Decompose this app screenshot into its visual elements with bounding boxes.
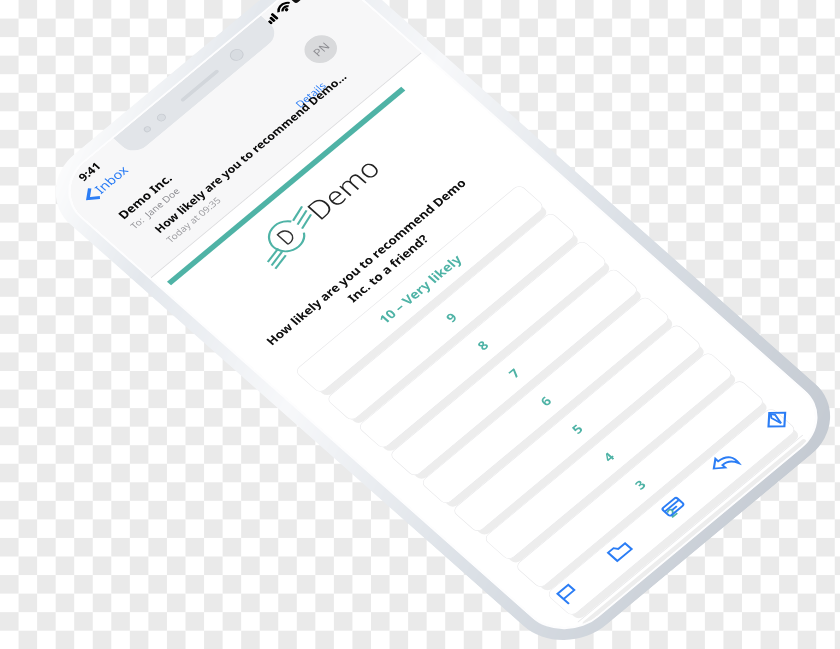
staticText: 1	[687, 525, 694, 532]
button[interactable]: 9	[326, 211, 577, 422]
button[interactable]: 7	[388, 267, 640, 478]
staticText: Demo Inc.	[114, 170, 176, 222]
button[interactable]: Reply	[698, 441, 750, 486]
staticText: 5	[567, 420, 587, 437]
staticText: PN	[309, 39, 333, 59]
button[interactable]: Compose	[751, 397, 803, 442]
staticText: 7	[505, 364, 524, 381]
staticText: 9:41	[75, 159, 104, 184]
button[interactable]: Inbox	[76, 158, 136, 209]
staticText: 8	[473, 336, 493, 353]
button[interactable]: Move to folder	[593, 528, 645, 573]
staticText: Inc. to a friend?	[344, 231, 432, 305]
button[interactable]: 4	[483, 351, 734, 561]
staticText: Today at 09:35	[163, 194, 224, 245]
button[interactable]: Flag	[541, 572, 592, 617]
staticText: 4	[599, 448, 619, 465]
button[interactable]: Archive	[646, 484, 698, 529]
button[interactable]: Details	[287, 74, 334, 115]
staticText: 6	[536, 392, 556, 409]
staticText: 10 – Very likely	[375, 251, 465, 327]
staticText: 9	[442, 308, 461, 326]
button[interactable]: 6	[420, 295, 671, 506]
button[interactable]: 2	[546, 407, 797, 617]
button[interactable]: 1	[577, 435, 803, 623]
staticText: Inbox	[90, 162, 132, 197]
staticText: How likely are you to recommend Demo…	[151, 69, 350, 235]
staticText: 2	[662, 504, 682, 521]
button[interactable]: 3	[514, 379, 766, 589]
staticText: How likely are you to recommend Demo	[262, 175, 470, 348]
staticText: 3	[630, 476, 650, 493]
staticText: Demo	[298, 150, 388, 227]
button[interactable]: 8	[357, 239, 608, 450]
button[interactable]: 10 – Very likely	[294, 184, 545, 394]
button[interactable]: 5	[451, 323, 703, 533]
staticText: Jane Doe	[141, 185, 183, 220]
staticText: To:	[127, 214, 147, 232]
